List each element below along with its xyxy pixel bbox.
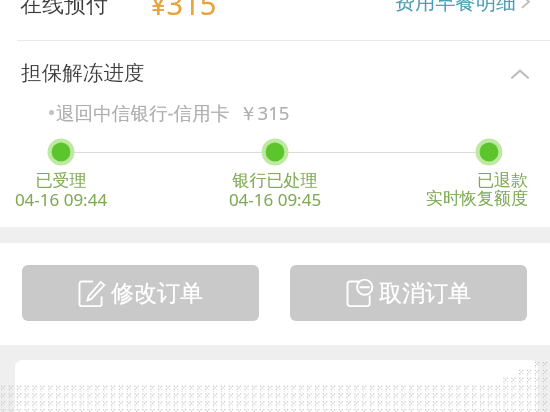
staticText: 已退款 [368,170,528,191]
staticText: 实时恢复额度 [368,188,528,209]
staticText: 银行已处理 [195,170,355,191]
staticText: 已受理 [0,170,141,191]
staticText: 在线预付 [20,0,108,19]
staticText: 退回中信银行-信用卡 ￥315 [56,100,290,125]
button[interactable]: 修改订单 [22,265,259,321]
button[interactable]: 取消订单 [290,265,527,321]
button[interactable]: 担保解冻进度 [0,46,550,92]
button[interactable]: Collapse section [500,53,540,93]
staticText: 04-16 09:44 [0,188,141,211]
staticText: 取消订单 [379,279,471,308]
staticText: 费用早餐明细 [395,0,517,15]
staticText: 修改订单 [111,279,203,308]
staticText: 担保解冻进度 [21,60,145,86]
button[interactable]: 费用早餐明细 [395,0,533,15]
staticText: 04-16 09:45 [195,188,355,211]
staticText: ¥315 [150,0,217,23]
